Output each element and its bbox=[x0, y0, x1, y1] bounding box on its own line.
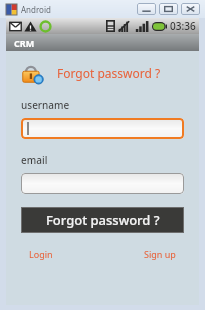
staticText: email bbox=[21, 153, 48, 167]
button[interactable]: Login bbox=[21, 246, 61, 262]
button[interactable]: Minimize bbox=[137, 3, 156, 15]
staticText: username bbox=[21, 98, 70, 112]
staticText: Android bbox=[21, 4, 51, 15]
staticText: Login bbox=[29, 248, 53, 260]
button[interactable] bbox=[21, 173, 184, 194]
button[interactable]: Sign up bbox=[136, 246, 184, 262]
button[interactable]: Maximize bbox=[159, 3, 178, 15]
staticText: CRM bbox=[14, 37, 35, 49]
button[interactable]: Forgot password ? bbox=[21, 207, 184, 233]
staticText: Forgot password ? bbox=[57, 65, 161, 81]
staticText: 03:36 bbox=[170, 19, 196, 33]
staticText: Sign up bbox=[144, 248, 176, 260]
button[interactable] bbox=[21, 118, 184, 139]
button[interactable]: Close bbox=[181, 3, 200, 15]
staticText: Forgot password ? bbox=[46, 211, 160, 229]
